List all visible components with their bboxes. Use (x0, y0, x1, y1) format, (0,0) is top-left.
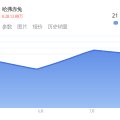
button[interactable]: 报价 (32, 23, 42, 30)
staticText: 图片 (17, 23, 27, 30)
staticText: 报价 (32, 23, 42, 30)
staticText: 历史销量 (48, 23, 68, 30)
staticText: 21 (112, 12, 118, 19)
staticText: 参数 (2, 23, 12, 30)
button[interactable]: 参数 (2, 23, 12, 30)
staticText: 哈弗赤兔 (2, 6, 22, 13)
button[interactable]: 图片 (17, 23, 27, 30)
button[interactable]: 历史销量 (48, 23, 68, 30)
staticText: 7月 (89, 108, 95, 114)
staticText: 6月 (38, 108, 44, 114)
staticText: 8.28-12.88万 (2, 14, 23, 19)
